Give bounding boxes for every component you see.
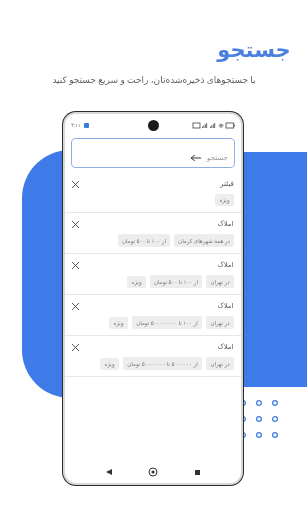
staticText: در تهران bbox=[210, 360, 230, 367]
button[interactable]: Remove bbox=[65, 213, 241, 253]
other: Remove bbox=[72, 181, 79, 188]
button[interactable]: Remove bbox=[65, 295, 241, 335]
staticText: ویژه bbox=[131, 279, 142, 285]
staticText: ۳:۱۱ bbox=[71, 122, 81, 129]
button[interactable]: در همهٔ شهرهای کرمان bbox=[174, 234, 234, 247]
button[interactable]: Home bbox=[146, 465, 160, 479]
button[interactable]: در تهران bbox=[206, 275, 234, 288]
button[interactable]: از ۵۰۰۰۰۰۰ تا ۵۰۰۰۰۰۰۰ تومان bbox=[123, 357, 202, 370]
button[interactable]: ویژه bbox=[100, 358, 119, 370]
staticText: از ۱۰۰ تا ۵۰۰ تومان bbox=[122, 237, 166, 244]
staticText: ویژه bbox=[113, 320, 124, 326]
staticText: با جستجوهای ذخیره‌شده‌تان، راحت و سریع ج… bbox=[52, 73, 256, 85]
other: Remove bbox=[72, 344, 79, 351]
button[interactable]: از ۱۰۰ تا ۵۰۰۰۰۰۰۰۰ تومان bbox=[132, 316, 202, 329]
other: Search bbox=[191, 153, 201, 163]
staticText: در تهران bbox=[210, 278, 230, 285]
button[interactable]: Remove bbox=[65, 173, 241, 212]
other: Remove bbox=[72, 221, 79, 228]
staticText: از ۵۰۰۰۰۰۰ تا ۵۰۰۰۰۰۰۰ تومان bbox=[127, 360, 198, 367]
button[interactable]: Remove bbox=[65, 254, 241, 294]
button[interactable]: Recents bbox=[190, 465, 204, 479]
staticText: از ۱۰۰ تا ۵۰۰ تومان bbox=[154, 278, 198, 285]
button[interactable]: Remove bbox=[65, 336, 241, 376]
button[interactable]: Search bbox=[71, 138, 235, 168]
button[interactable]: از ۱۰۰ تا ۵۰۰ تومان bbox=[150, 275, 202, 288]
button[interactable]: در تهران bbox=[206, 357, 234, 370]
staticText: املاک bbox=[217, 220, 234, 228]
staticText: جستجو bbox=[217, 38, 291, 62]
other: Remove bbox=[72, 262, 79, 269]
staticText: املاک bbox=[217, 302, 234, 310]
button[interactable]: ویژه bbox=[215, 194, 234, 206]
button[interactable]: ویژه bbox=[127, 276, 146, 288]
button[interactable]: ویژه bbox=[109, 317, 128, 329]
staticText: فیلتر bbox=[220, 180, 234, 188]
staticText: ویژه bbox=[104, 361, 115, 367]
staticText: در همهٔ شهرهای کرمان bbox=[178, 237, 230, 244]
button[interactable]: در تهران bbox=[206, 316, 234, 329]
button[interactable]: از ۱۰۰ تا ۵۰۰ تومان bbox=[118, 234, 170, 247]
staticText: در تهران bbox=[210, 319, 230, 326]
staticText: ویژه bbox=[219, 197, 230, 203]
other: Remove bbox=[72, 303, 79, 310]
staticText: املاک bbox=[217, 261, 234, 269]
staticText: جستجو bbox=[207, 154, 228, 162]
button[interactable]: Back bbox=[102, 465, 116, 479]
staticText: املاک bbox=[217, 343, 234, 351]
staticText: از ۱۰۰ تا ۵۰۰۰۰۰۰۰۰ تومان bbox=[136, 319, 198, 326]
